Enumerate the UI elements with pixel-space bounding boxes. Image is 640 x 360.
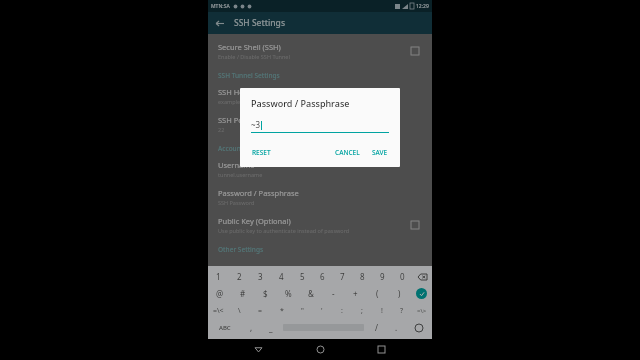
staticText: 0 [400, 271, 405, 282]
staticText: SSH Host [218, 87, 251, 97]
button[interactable]: @ [208, 285, 231, 302]
staticText: ? [400, 306, 404, 316]
button[interactable]: 7 [332, 268, 352, 285]
staticText: ~3 [251, 119, 261, 130]
button[interactable]: : [332, 302, 352, 319]
button[interactable]: ABC [208, 319, 241, 336]
button[interactable]: ' [312, 302, 332, 319]
staticText: Account Settings [218, 144, 271, 153]
staticText: MTN:SA [211, 3, 230, 10]
staticText: . [395, 322, 398, 333]
button[interactable]: ( [366, 285, 388, 302]
staticText: Enable / Disable SSH Tunnel [218, 53, 290, 60]
staticText: RESET [252, 148, 271, 157]
button[interactable]: 3 [250, 268, 271, 285]
staticText: * [280, 306, 284, 316]
button[interactable]: ; [352, 302, 372, 319]
staticText: " [301, 306, 304, 316]
button[interactable]: Home [310, 339, 331, 360]
staticText: ; [361, 306, 363, 316]
button[interactable]: - [322, 285, 344, 302]
staticText: , [250, 322, 253, 333]
button[interactable]: 5 [292, 268, 312, 285]
button[interactable]: , [241, 319, 261, 336]
staticText: : [341, 306, 343, 316]
button[interactable]: More symbols [412, 302, 432, 319]
button[interactable]: 1 [208, 268, 229, 285]
staticText: =\> [417, 307, 427, 315]
staticText: Secure Shell (SSH) [218, 42, 281, 52]
button[interactable]: ! [372, 302, 392, 319]
button[interactable]: & [300, 285, 322, 302]
staticText: =\< [213, 306, 224, 316]
button[interactable]: Toggle [408, 218, 422, 232]
staticText: 1 [216, 271, 221, 282]
button[interactable]: * [271, 302, 292, 319]
staticText: ' [321, 306, 323, 316]
staticText: example.server.favorite-resolution.com [218, 98, 319, 105]
staticText: 6 [320, 271, 325, 282]
staticText: / [375, 322, 378, 333]
staticText: 12:29 [416, 3, 429, 10]
button[interactable]: Back [248, 339, 269, 360]
button[interactable]: Password / Passphrase [208, 183, 432, 211]
button[interactable]: Recents [371, 339, 392, 360]
staticText: @ [216, 288, 224, 299]
staticText: % [285, 288, 292, 299]
staticText: ( [376, 288, 379, 299]
button[interactable]: Backspace [412, 268, 432, 285]
button[interactable]: 6 [312, 268, 332, 285]
button[interactable]: # [231, 285, 254, 302]
staticText: Use public key to authenticate instead o… [218, 227, 350, 234]
button[interactable]: + [344, 285, 366, 302]
staticText: - [332, 288, 335, 299]
button[interactable]: $ [254, 285, 277, 302]
button[interactable]: / [366, 319, 386, 336]
button[interactable]: =\< [208, 302, 229, 319]
staticText: SSH Password [218, 199, 255, 206]
button[interactable]: 9 [372, 268, 392, 285]
button[interactable]: 2 [229, 268, 250, 285]
staticText: ) [398, 288, 401, 299]
staticText: 3 [258, 271, 263, 282]
button[interactable]: RESET [248, 145, 275, 160]
button[interactable]: SSH Host [208, 82, 432, 110]
staticText: 5 [300, 271, 305, 282]
button[interactable]: = [250, 302, 271, 319]
button[interactable]: 4 [271, 268, 292, 285]
staticText: = [258, 306, 263, 316]
button[interactable]: ? [392, 302, 412, 319]
button[interactable]: Public Key (Optional) [208, 211, 432, 239]
staticText: $ [263, 288, 268, 299]
staticText: SAVE [372, 148, 388, 157]
button[interactable]: 8 [352, 268, 372, 285]
button[interactable]: Secure Shell (SSH) [208, 37, 432, 65]
button[interactable]: % [277, 285, 300, 302]
staticText: CANCEL [335, 148, 360, 157]
staticText: SSH Tunnel Settings [218, 71, 280, 80]
staticText: Other Settings [218, 245, 264, 254]
staticText: Password / Passphrase [251, 97, 350, 109]
button[interactable]: SAVE [368, 145, 392, 160]
button[interactable]: Emoji [406, 319, 432, 336]
staticText: 9 [380, 271, 385, 282]
button[interactable]: SSH Port [208, 110, 432, 138]
staticText: Public Key (Optional) [218, 216, 291, 226]
button[interactable]: . [386, 319, 406, 336]
button[interactable]: " [292, 302, 312, 319]
button[interactable]: _ [261, 319, 281, 336]
button[interactable]: Toggle [408, 44, 422, 58]
staticText: ABC [219, 324, 231, 332]
button[interactable]: Username [208, 155, 432, 183]
staticText: Username [218, 160, 255, 170]
button[interactable]: Back [208, 12, 230, 34]
button[interactable]: ) [388, 285, 410, 302]
staticText: _ [269, 322, 273, 333]
button[interactable]: CANCEL [331, 145, 364, 160]
button[interactable]: \ [229, 302, 250, 319]
staticText: + [353, 288, 358, 299]
button[interactable]: 0 [392, 268, 412, 285]
button[interactable]: Enter [410, 285, 432, 302]
staticText: ! [381, 306, 383, 316]
